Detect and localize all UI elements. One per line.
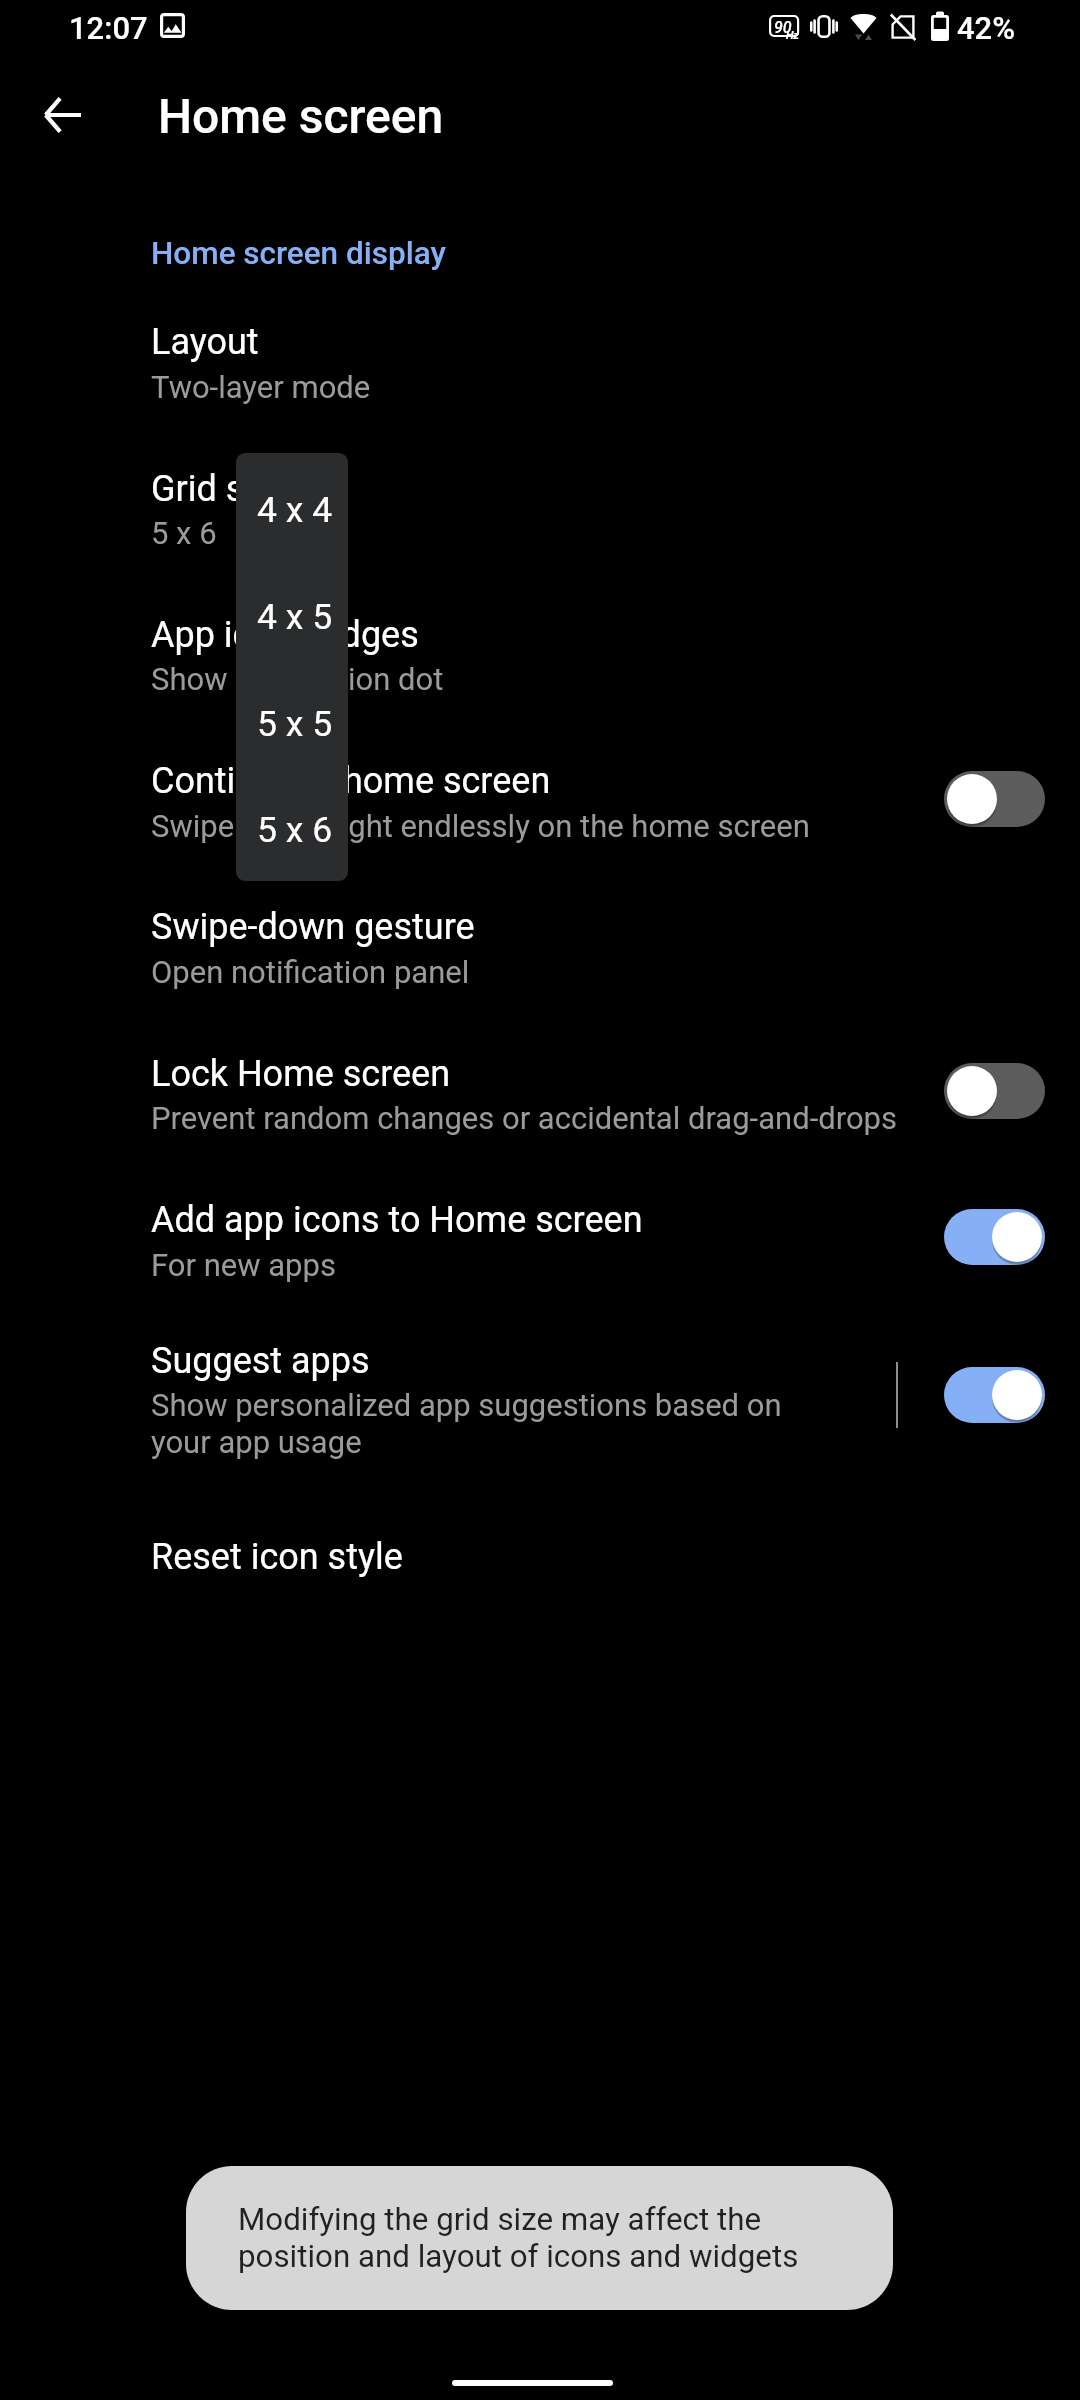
button[interactable] [236, 456, 348, 563]
button[interactable] [236, 563, 348, 670]
staticText: Prevent random changes or accidental dra… [151, 1100, 897, 1136]
button[interactable] [0, 455, 1080, 545]
staticText: Hz [786, 29, 799, 42]
button[interactable] [0, 748, 1080, 838]
staticText: 5 x 6 [257, 809, 333, 851]
staticText: Show personalized app suggestions based … [151, 1387, 782, 1423]
button[interactable] [236, 670, 348, 777]
button[interactable] [0, 309, 1080, 399]
button[interactable] [0, 1327, 1080, 1454]
staticText: Open notification panel [151, 954, 470, 990]
staticText: Home screen display [151, 235, 446, 272]
button[interactable]: Toggle off [932, 1055, 1056, 1127]
staticText: Suggest apps [151, 1340, 370, 1382]
staticText: Swipe-down gesture [151, 906, 475, 948]
staticText: 4 x 4 [257, 489, 333, 531]
button[interactable] [0, 1524, 1080, 1586]
button[interactable] [236, 776, 348, 883]
staticText: App icon badges [151, 614, 419, 656]
button[interactable]: Toggle off [932, 763, 1056, 835]
staticText: Two-layer mode [151, 369, 371, 405]
staticText: Layout [151, 321, 259, 363]
button[interactable]: Toggle on [932, 1359, 1056, 1431]
staticText: 90 [774, 18, 792, 37]
staticText: Reset icon style [151, 1536, 403, 1578]
button[interactable]: Back [21, 73, 105, 157]
button[interactable] [0, 1040, 1080, 1130]
staticText: Modifying the grid size may affect the [238, 2201, 762, 2238]
button[interactable]: Toggle on [932, 1201, 1056, 1273]
staticText: 12:07 [69, 10, 148, 46]
staticText: Swipe left or right endlessly on the hom… [151, 808, 810, 844]
staticText: Grid size [151, 468, 290, 510]
staticText: your app usage [151, 1424, 362, 1460]
staticText: For new apps [151, 1247, 336, 1283]
staticText: position and layout of icons and widgets [238, 2238, 799, 2275]
button[interactable] [0, 894, 1080, 984]
button[interactable] [0, 601, 1080, 691]
staticText: Show notification dot [151, 661, 444, 697]
staticText: Continuous home screen [151, 760, 551, 802]
staticText: Home screen [158, 88, 444, 144]
staticText: 5 x 5 [257, 703, 333, 745]
staticText: 4 x 5 [257, 596, 333, 638]
button[interactable] [0, 1186, 1080, 1276]
staticText: 42% [957, 10, 1016, 46]
staticText: Add app icons to Home screen [151, 1199, 643, 1241]
staticText: 5 x 6 [151, 515, 217, 551]
staticText: Lock Home screen [151, 1053, 451, 1095]
